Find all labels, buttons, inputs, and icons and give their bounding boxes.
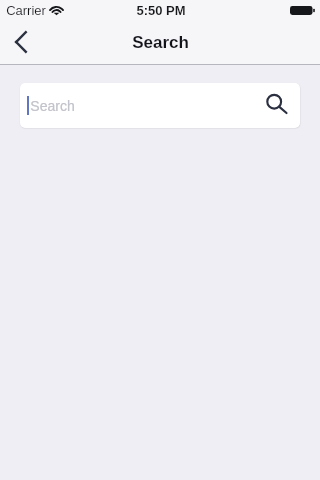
staticText: Search: [30, 98, 75, 114]
staticText: 5:50 PM: [136, 3, 186, 18]
button[interactable]: Back: [0, 20, 42, 64]
staticText: Search: [132, 33, 189, 52]
button[interactable]: Search: [20, 83, 300, 128]
staticText: Carrier: [6, 3, 46, 18]
